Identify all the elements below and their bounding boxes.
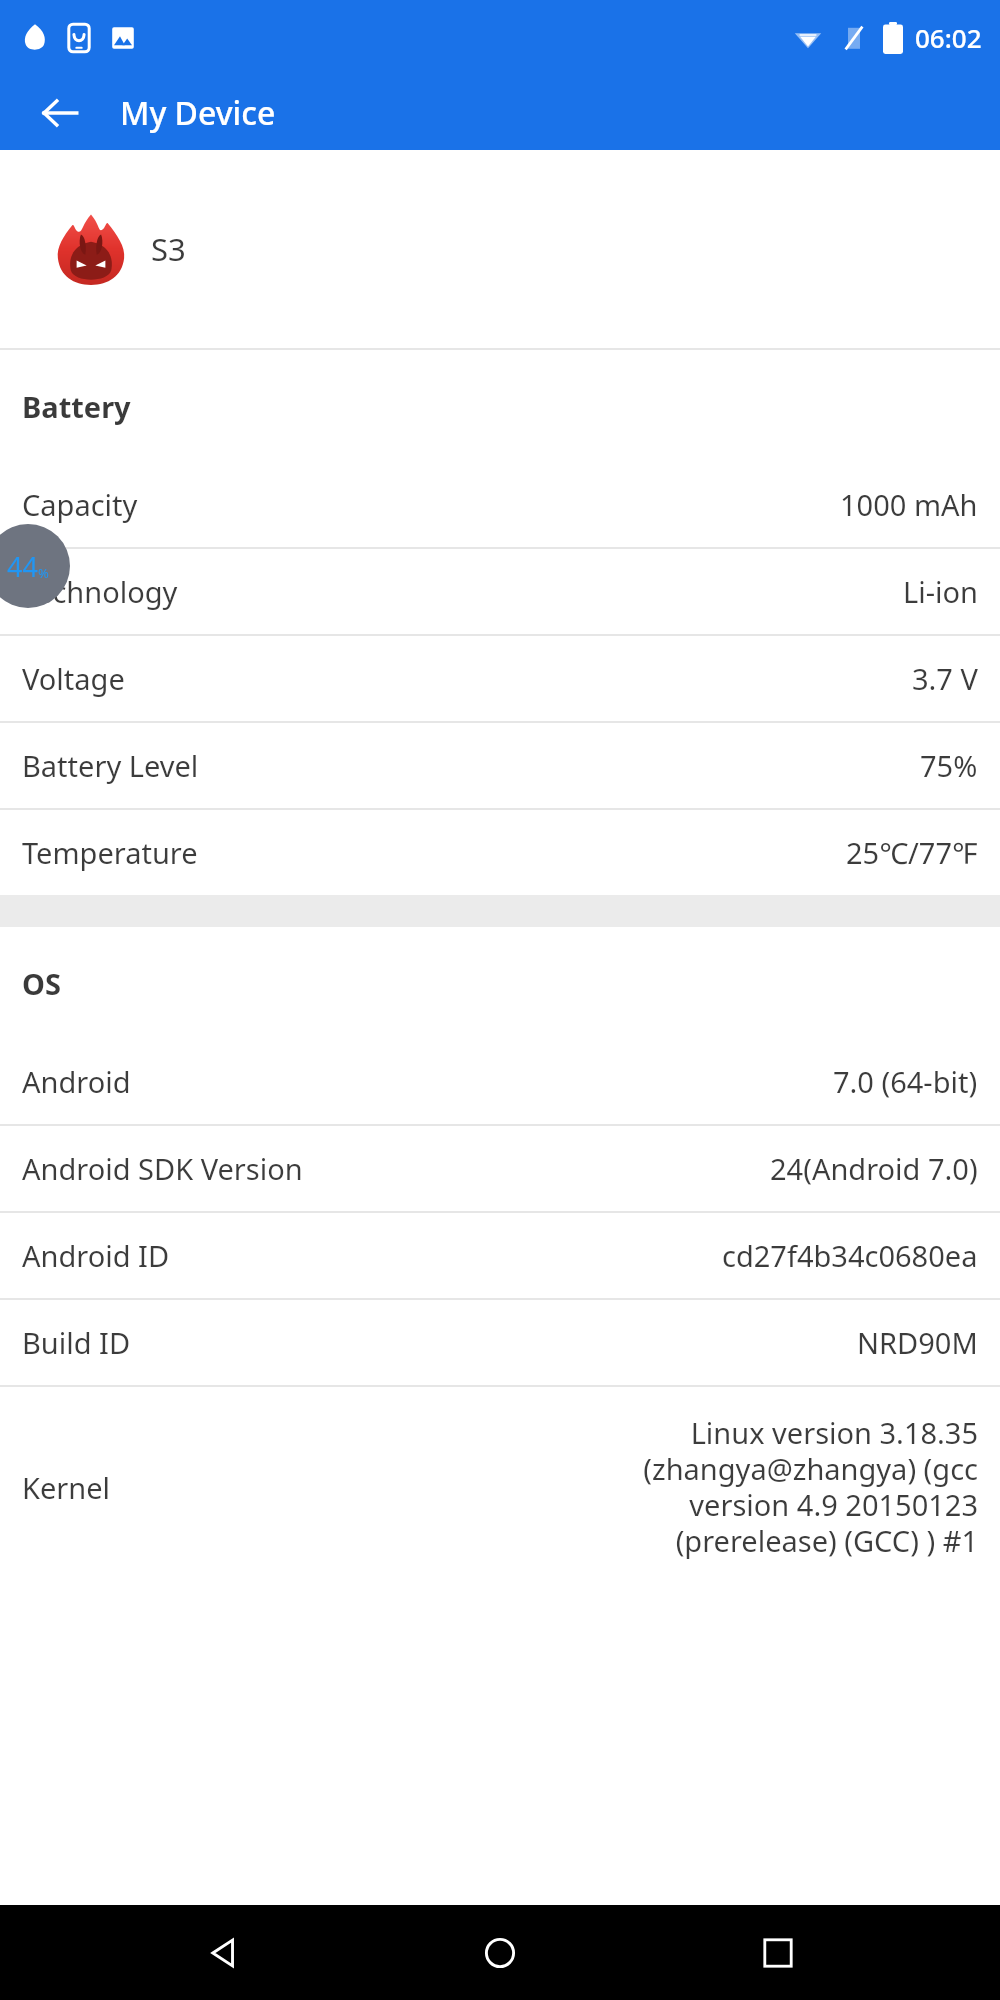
- button[interactable]: Temperature: [0, 810, 1000, 895]
- button[interactable]: Android SDK Version: [0, 1126, 1000, 1211]
- staticText: Kernel: [22, 1468, 111, 1507]
- button[interactable]: Technology: [0, 549, 1000, 634]
- staticText: My Device: [120, 91, 276, 135]
- button[interactable]: S3: [0, 150, 1000, 348]
- staticText: 75%: [920, 746, 978, 785]
- staticText: Capacity: [22, 485, 138, 524]
- staticText: Technology: [22, 572, 178, 611]
- staticText: Build ID: [22, 1323, 131, 1362]
- staticText: Li-ion: [903, 572, 978, 611]
- staticText: 06:02: [915, 20, 982, 55]
- staticText: 3.7 V: [912, 659, 978, 698]
- staticText: Android: [22, 1062, 131, 1101]
- button[interactable]: Back: [0, 75, 120, 150]
- staticText: Voltage: [22, 659, 125, 698]
- staticText: NRD90M: [857, 1323, 978, 1362]
- staticText: 25℃/77℉: [846, 833, 978, 872]
- button[interactable]: Voltage: [0, 636, 1000, 721]
- button[interactable]: Android ID: [0, 1213, 1000, 1298]
- button[interactable]: Back: [168, 1905, 278, 2000]
- staticText: 1000 mAh: [840, 485, 978, 524]
- staticText: 7.0 (64-bit): [833, 1062, 978, 1101]
- button[interactable]: Battery boost widget: [0, 524, 70, 608]
- staticText: Linux version 3.18.35 (zhangya@zhangya) …: [643, 1413, 978, 1561]
- button[interactable]: Recent apps: [723, 1905, 833, 2000]
- staticText: S3: [151, 228, 186, 270]
- button[interactable]: Capacity: [0, 462, 1000, 547]
- staticText: cd27f4b34c0680ea: [722, 1236, 978, 1275]
- button[interactable]: Home: [445, 1905, 555, 2000]
- staticText: %: [38, 564, 49, 582]
- staticText: Battery: [22, 387, 131, 426]
- staticText: Temperature: [22, 833, 198, 872]
- staticText: Android ID: [22, 1236, 170, 1275]
- staticText: Android SDK Version: [22, 1149, 303, 1188]
- staticText: Battery Level: [22, 746, 199, 785]
- staticText: 44: [7, 548, 38, 585]
- button[interactable]: Kernel: [0, 1387, 1000, 1587]
- button[interactable]: Build ID: [0, 1300, 1000, 1385]
- button[interactable]: Battery Level: [0, 723, 1000, 808]
- staticText: 24(Android 7.0): [770, 1149, 978, 1188]
- button[interactable]: Android: [0, 1039, 1000, 1124]
- staticText: OS: [22, 964, 61, 1003]
